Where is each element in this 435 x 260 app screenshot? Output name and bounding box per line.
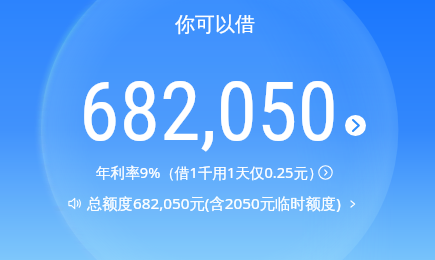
button[interactable]: 去借钱 <box>345 115 366 136</box>
staticText: 年利率9%（借1千用1天仅0.25元） <box>96 162 323 182</box>
button[interactable]: 总额度682,050元(含2050元临时额度) <box>68 193 358 214</box>
button[interactable]: 年利率9%（借1千用1天仅0.25元） <box>96 162 338 182</box>
staticText: 总额度682,050元(含2050元临时额度) <box>87 193 341 214</box>
staticText: 你可以借 <box>175 12 255 37</box>
staticText: 682,050 <box>79 64 339 160</box>
